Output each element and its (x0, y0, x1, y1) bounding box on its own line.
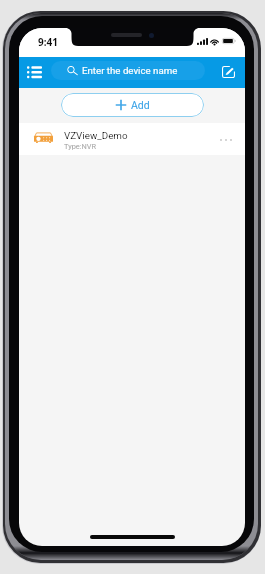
staticText: Enter the device name (82, 65, 178, 76)
staticText: Type:NVR (64, 142, 97, 151)
staticText: VZView_Demo (64, 130, 128, 141)
button[interactable]: More options (215, 129, 237, 151)
staticText: Add (131, 99, 150, 111)
staticText: 9:41 (38, 35, 58, 49)
button[interactable]: Menu (23, 60, 46, 84)
button[interactable]: Add (61, 93, 204, 117)
button[interactable]: Edit (216, 60, 240, 84)
button[interactable]: VZView_Demo (19, 123, 245, 155)
button[interactable]: Enter the device name (51, 61, 205, 80)
